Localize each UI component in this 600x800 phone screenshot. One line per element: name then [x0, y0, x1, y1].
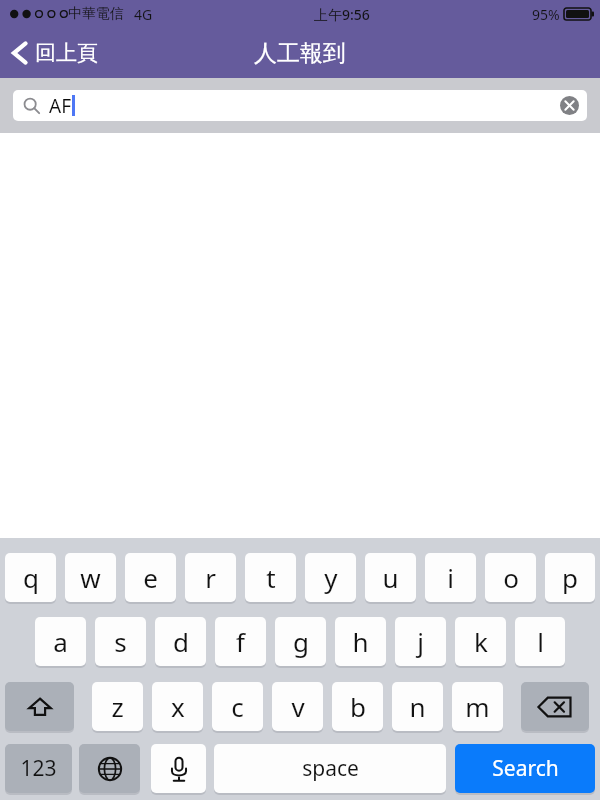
button[interactable]: h — [335, 617, 386, 667]
button[interactable]: r — [185, 553, 236, 603]
staticText: a — [53, 624, 68, 659]
staticText: t — [266, 560, 276, 595]
button[interactable]: u — [365, 553, 416, 603]
button[interactable]: n — [392, 682, 443, 732]
staticText: 回上頁 — [35, 40, 98, 66]
staticText: d — [173, 624, 189, 659]
button[interactable]: AF — [13, 90, 587, 121]
staticText: m — [465, 689, 490, 724]
button[interactable]: e — [125, 553, 176, 603]
button[interactable]: 123 — [5, 744, 72, 794]
staticText: Search — [492, 754, 559, 783]
staticText: g — [293, 624, 309, 659]
button[interactable]: o — [485, 553, 536, 603]
button[interactable]: s — [95, 617, 146, 667]
staticText: z — [111, 689, 124, 724]
button[interactable]: g — [275, 617, 326, 667]
button[interactable]: t — [245, 553, 296, 603]
staticText: space — [302, 754, 359, 783]
button[interactable]: v — [272, 682, 323, 732]
staticText: 4G — [134, 5, 153, 24]
staticText: n — [409, 689, 426, 724]
button[interactable]: k — [455, 617, 506, 667]
staticText: f — [236, 624, 245, 659]
button[interactable]: space — [214, 744, 446, 794]
staticText: o — [503, 560, 519, 595]
button[interactable]: i — [425, 553, 476, 603]
staticText: q — [23, 560, 39, 595]
button[interactable]: q — [5, 553, 56, 603]
staticText: 123 — [20, 754, 57, 783]
staticText: k — [474, 624, 488, 659]
staticText: v — [291, 689, 305, 724]
staticText: y — [324, 560, 338, 595]
button[interactable]: m — [452, 682, 503, 732]
button[interactable]: Search — [455, 744, 595, 794]
button[interactable]: Shift — [5, 682, 74, 732]
staticText: x — [171, 689, 185, 724]
staticText: s — [114, 624, 127, 659]
staticText: w — [80, 560, 101, 595]
button[interactable]: z — [92, 682, 143, 732]
staticText: e — [143, 560, 158, 595]
button[interactable]: Dictate — [151, 744, 206, 794]
staticText: AF — [49, 93, 72, 119]
button[interactable]: j — [395, 617, 446, 667]
button[interactable]: c — [212, 682, 263, 732]
button[interactable]: l — [515, 617, 565, 667]
staticText: h — [352, 624, 369, 659]
button[interactable]: Backspace — [521, 682, 589, 732]
button[interactable]: f — [215, 617, 266, 667]
button[interactable]: b — [332, 682, 383, 732]
staticText: 95% — [532, 5, 560, 24]
button[interactable]: 回上頁 — [0, 33, 110, 73]
staticText: p — [562, 560, 578, 595]
staticText: r — [205, 560, 216, 595]
staticText: 人工報到 — [254, 39, 346, 68]
button[interactable]: x — [152, 682, 203, 732]
staticText: 中華電信 — [68, 5, 124, 23]
staticText: i — [447, 560, 454, 595]
staticText: b — [350, 689, 366, 724]
button[interactable]: w — [65, 553, 116, 603]
button[interactable]: a — [35, 617, 86, 667]
button[interactable]: p — [545, 553, 595, 603]
staticText: 上午9:56 — [314, 5, 370, 24]
staticText: l — [537, 624, 544, 659]
button[interactable]: y — [305, 553, 356, 603]
staticText: c — [231, 689, 244, 724]
button[interactable]: d — [155, 617, 206, 667]
button[interactable]: Clear text — [560, 96, 579, 115]
button[interactable]: Switch keyboard — [79, 744, 140, 794]
staticText: u — [382, 560, 399, 595]
staticText: j — [417, 624, 424, 659]
